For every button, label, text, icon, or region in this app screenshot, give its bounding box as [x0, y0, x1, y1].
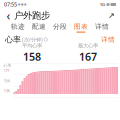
staticText: 171	[3, 68, 9, 73]
staticText: 最大心率	[78, 42, 98, 49]
button[interactable]: 配速	[28, 22, 49, 33]
staticText: 07:55	[4, 1, 17, 8]
button[interactable]: 图表	[70, 22, 91, 33]
staticText: (次/分钟)	[21, 36, 43, 43]
staticText: 详情	[101, 35, 115, 44]
staticText: ‹	[6, 7, 10, 23]
staticText: 心率	[3, 63, 11, 68]
staticText: 167	[79, 49, 97, 64]
staticText: 配速	[32, 22, 46, 31]
staticText: 分段	[53, 22, 67, 31]
staticText: 5G	[100, 2, 105, 7]
staticText: 158	[23, 49, 41, 64]
staticText: 平均心率	[22, 42, 42, 49]
button[interactable]: 轨迹	[7, 22, 28, 33]
button[interactable]: 详情	[91, 22, 112, 33]
staticText: 图表	[74, 22, 88, 31]
staticText: 154	[3, 78, 9, 83]
staticText: 轨迹	[11, 22, 25, 31]
staticText: 户外跑步	[14, 10, 50, 21]
button[interactable]: 分享	[106, 10, 117, 21]
button[interactable]: 详情	[101, 35, 115, 44]
staticText: 心率	[5, 35, 21, 44]
staticText: 138	[3, 88, 9, 93]
staticText: ↗	[108, 11, 115, 20]
button[interactable]: 返回	[3, 9, 14, 21]
staticText: 详情	[95, 22, 109, 31]
button[interactable]: 分段	[49, 22, 70, 33]
